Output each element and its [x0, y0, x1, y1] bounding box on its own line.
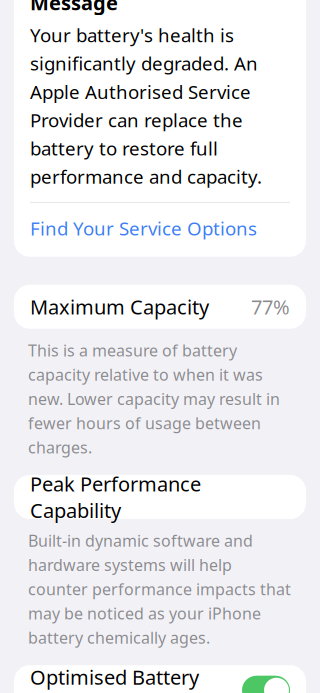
staticText: Your battery's health is significantly d… — [30, 23, 262, 189]
button[interactable]: Peak Performance Capability — [14, 475, 306, 519]
staticText: This is a measure of battery capacity re… — [28, 340, 280, 458]
staticText: 77% — [251, 293, 290, 320]
staticText: Maximum Capacity — [30, 293, 209, 320]
button[interactable]: Find Your Service Options — [30, 203, 290, 243]
staticText: Optimised Battery Charging — [30, 664, 199, 693]
button[interactable]: Optimised Battery Charging — [242, 676, 290, 693]
staticText: Built-in dynamic software and hardware s… — [28, 530, 291, 648]
staticText: Find Your Service Options — [30, 216, 257, 241]
staticText: Important Battery Message — [30, 0, 216, 16]
staticText: Peak Performance Capability — [30, 470, 201, 523]
